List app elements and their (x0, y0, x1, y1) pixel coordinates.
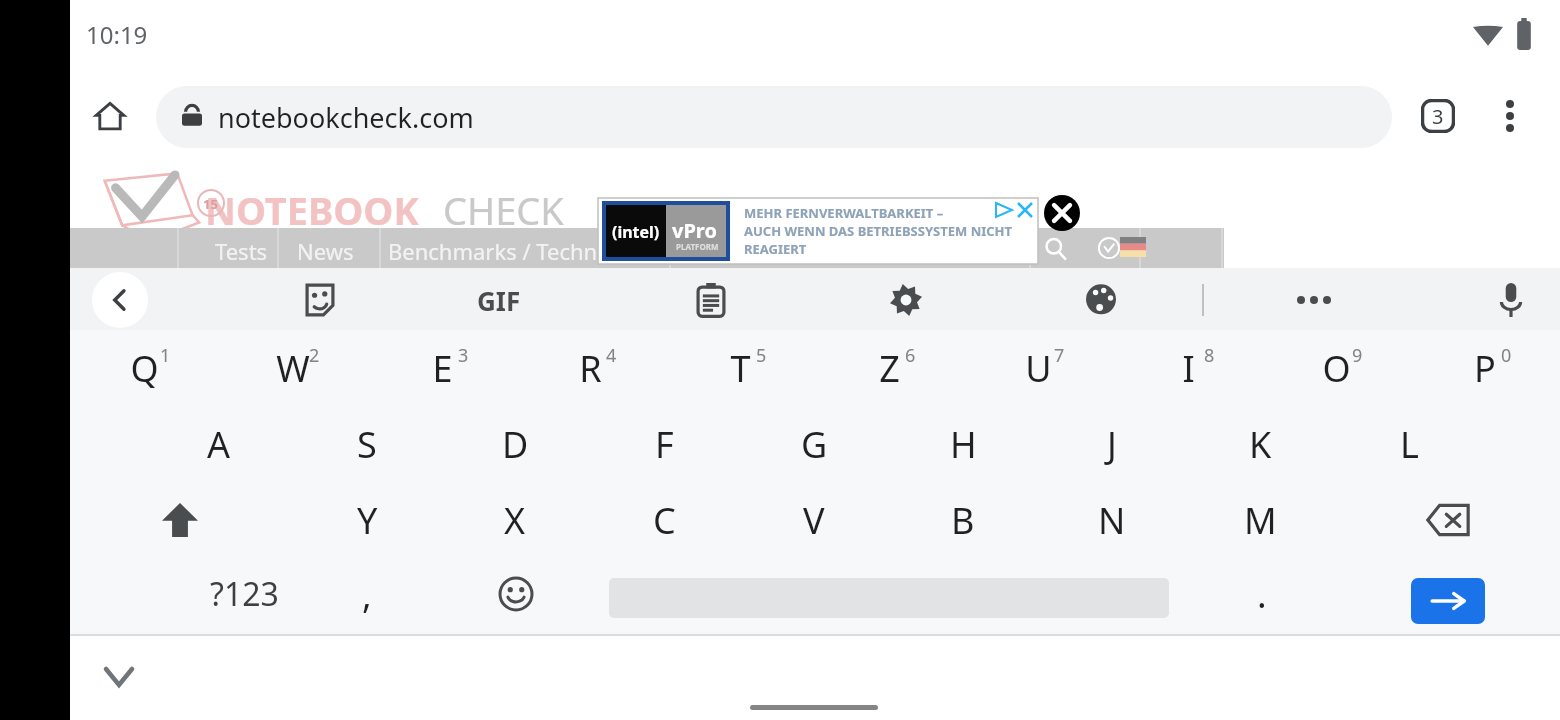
staticText: V (803, 496, 825, 545)
staticText: REAGIERT (744, 240, 807, 258)
button[interactable]: ?123 (170, 558, 318, 630)
button[interactable]: S (293, 406, 441, 482)
staticText: 9 (1352, 343, 1363, 368)
staticText: U (1025, 344, 1052, 393)
button[interactable]: X (441, 482, 589, 558)
button[interactable]: Close ad (1044, 195, 1080, 231)
staticText: 7 (1054, 343, 1065, 368)
button[interactable]: V (740, 482, 888, 558)
button[interactable]: Voice input (1483, 272, 1539, 328)
button[interactable]: GIF (471, 272, 527, 328)
staticText: 1 (160, 343, 171, 368)
button[interactable]: Z (815, 330, 963, 406)
button[interactable]: Themes (1073, 272, 1129, 328)
button[interactable]: W (219, 330, 367, 406)
staticText: H (950, 420, 977, 469)
staticText: PLATFORM (676, 241, 719, 252)
staticText: Z (879, 344, 900, 393)
staticText: 3 (458, 343, 469, 368)
staticText: 4 (606, 343, 617, 368)
button[interactable]: Home (82, 88, 138, 144)
button[interactable]: I (1114, 330, 1262, 406)
staticText: G (801, 420, 828, 469)
button[interactable]: , (293, 558, 441, 630)
button[interactable]: notebookcheck.com (156, 86, 1392, 148)
staticText: News (297, 236, 354, 266)
staticText: T (730, 344, 751, 393)
button[interactable]: More (1286, 272, 1342, 328)
button[interactable]: A (145, 406, 293, 482)
button[interactable]: . (1188, 558, 1336, 630)
staticText: E (432, 344, 453, 393)
staticText: Tests (215, 236, 268, 266)
staticText: 6 (905, 343, 916, 368)
staticText: B (951, 496, 975, 545)
button[interactable]: More options (1482, 88, 1538, 144)
button[interactable]: N (1038, 482, 1186, 558)
button[interactable]: L (1335, 406, 1483, 482)
staticText: Y (357, 496, 378, 545)
staticText: 0 (1501, 343, 1512, 368)
staticText: F (655, 420, 674, 469)
staticText: NOTEBOOK (205, 184, 419, 236)
button[interactable]: F (590, 406, 738, 482)
staticText: vPro (672, 217, 717, 244)
button[interactable]: O (1262, 330, 1410, 406)
staticText: X (504, 496, 526, 545)
staticText: C (653, 496, 676, 545)
button[interactable]: Y (293, 482, 441, 558)
button[interactable]: Clipboard (683, 272, 739, 328)
button[interactable]: U (964, 330, 1112, 406)
button[interactable]: G (740, 406, 888, 482)
button[interactable]: Hide keyboard (92, 650, 146, 704)
button[interactable]: Enter (1411, 578, 1485, 624)
staticText: (intel) (612, 221, 660, 243)
staticText: P (1474, 344, 1496, 393)
staticText: GIF (477, 283, 521, 318)
staticText: O (1322, 344, 1351, 393)
staticText: K (1249, 420, 1272, 469)
staticText: . (1257, 570, 1267, 619)
button[interactable]: C (590, 482, 738, 558)
staticText: 10:19 (86, 18, 148, 51)
staticText: R (579, 344, 602, 393)
staticText: 2 (309, 343, 320, 368)
button[interactable]: B (889, 482, 1037, 558)
staticText: ?123 (210, 572, 279, 616)
staticText: 15 (203, 195, 218, 213)
staticText: AUCH WENN DAS BETRIEBSSYSTEM NICHT (744, 222, 1013, 240)
staticText: notebookcheck.com (218, 99, 474, 136)
button[interactable]: P (1411, 330, 1559, 406)
button[interactable]: K (1186, 406, 1334, 482)
button[interactable]: Settings (878, 272, 934, 328)
staticText: 3 (1432, 103, 1444, 130)
button[interactable]: Emoji (442, 558, 590, 630)
button[interactable]: J (1038, 406, 1186, 482)
button[interactable]: T (666, 330, 814, 406)
button[interactable]: Backspace (1374, 482, 1522, 558)
staticText: M (1244, 496, 1277, 545)
button[interactable]: H (889, 406, 1037, 482)
staticText: 5 (756, 343, 767, 368)
button[interactable]: Back (92, 272, 148, 328)
staticText: CHECK (443, 184, 564, 236)
staticText: S (357, 420, 377, 469)
staticText: 8 (1204, 343, 1215, 368)
staticText: N (1098, 496, 1126, 545)
staticText: I (1182, 344, 1195, 393)
staticText: MEHR FERNVERWALTBARKEIT – (744, 204, 944, 222)
button[interactable]: R (516, 330, 664, 406)
button[interactable]: M (1186, 482, 1334, 558)
button[interactable]: Q (70, 330, 218, 406)
staticText: L (1400, 420, 1419, 469)
staticText: Benchmarks / Technik (388, 236, 615, 266)
button[interactable]: Stickers (292, 272, 348, 328)
staticText: Q (130, 344, 159, 393)
staticText: J (1107, 420, 1117, 469)
staticText: D (502, 420, 529, 469)
button[interactable]: Shift (106, 482, 254, 558)
button[interactable]: E (368, 330, 516, 406)
button[interactable]: Tabs (1410, 88, 1466, 144)
button[interactable]: D (441, 406, 589, 482)
